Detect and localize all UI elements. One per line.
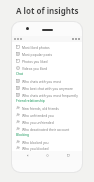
staticText: Most liked photos [22, 45, 50, 49]
staticText: Friend relationship [16, 99, 45, 103]
staticText: Who unfriended you [22, 113, 54, 117]
staticText: Photos you liked [22, 59, 48, 63]
button[interactable]: Who unfriended you [15, 111, 79, 118]
staticText: Who blocked you [22, 140, 49, 144]
button[interactable]: Who you blocked [15, 145, 79, 150]
button[interactable]: Back [21, 151, 33, 160]
button[interactable]: Who chats with you most frequently [15, 91, 79, 98]
button[interactable]: Videos you liked [15, 64, 79, 71]
staticText: Who deactivated their account [22, 127, 70, 131]
staticText: New friends, old friends [22, 106, 59, 110]
button[interactable]: Most popular posts [15, 50, 79, 57]
button[interactable]: Photos you liked [15, 57, 79, 64]
button[interactable]: Home [41, 151, 53, 160]
staticText: Who you blocked [22, 146, 49, 150]
button[interactable]: Who deactivated their account [15, 125, 79, 132]
staticText: Chat [16, 72, 24, 76]
staticText: Who best chat with you anymore [22, 86, 73, 90]
button[interactable]: Who you unfriended [15, 118, 79, 125]
staticText: Videos you liked [22, 66, 48, 70]
button[interactable]: Who blocked you [15, 138, 79, 145]
button[interactable]: Recents [62, 151, 74, 160]
button[interactable]: New friends, old friends [15, 104, 79, 111]
button[interactable]: Most liked photos [15, 43, 79, 50]
button[interactable]: Who chats with you most [15, 77, 79, 84]
staticText: A lot of insights [16, 5, 79, 16]
staticText: Who chats with you most frequently [22, 93, 78, 97]
staticText: Most popular posts [22, 52, 52, 56]
staticText: Who you unfriended [22, 120, 54, 124]
button[interactable]: Who best chat with you anymore [15, 84, 79, 91]
staticText: Blocking [16, 133, 30, 137]
staticText: Who chats with you most [22, 79, 61, 83]
